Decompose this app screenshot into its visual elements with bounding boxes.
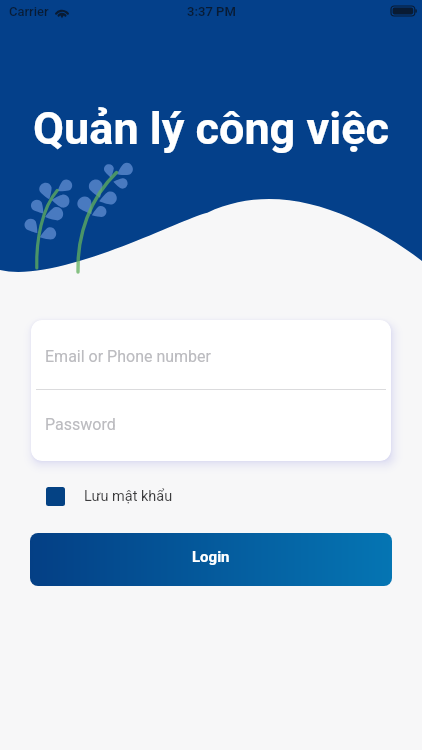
other: Battery	[391, 6, 417, 16]
button[interactable]: Login	[30, 533, 392, 586]
staticText: Password	[45, 415, 116, 434]
button[interactable]: Lưu mật khẩu	[46, 487, 173, 506]
staticText: 3:37 PM	[187, 4, 236, 19]
staticText: Lưu mật khẩu	[84, 488, 173, 505]
button[interactable]: Password	[31, 390, 391, 461]
staticText: Quản lý công việc	[0, 102, 422, 155]
button[interactable]: Email or Phone number	[31, 320, 391, 389]
staticText: Carrier	[9, 4, 49, 19]
staticText: Login	[192, 548, 230, 566]
staticText: Email or Phone number	[45, 347, 211, 366]
